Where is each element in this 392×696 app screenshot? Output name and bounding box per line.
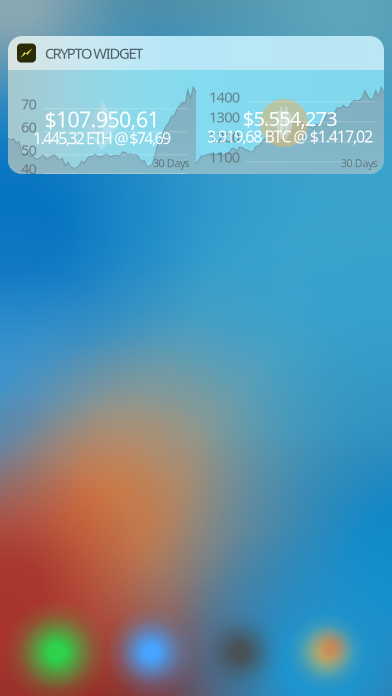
staticText: $107.950,61 [44,105,159,133]
staticText: 1300 [209,107,240,126]
staticText: 30 Days [153,156,190,170]
staticText: 1400 [209,87,240,106]
staticText: $5.554,273 [243,105,337,132]
staticText: 30 Days [341,156,378,170]
staticText: CRYPTO WIDGET [45,43,143,63]
staticText: 1100 [209,147,240,166]
staticText: 60 [21,117,37,136]
staticText: 3.919,68 BTC @ $1.417,02 [207,126,373,147]
staticText: 50 [21,140,37,159]
staticText: 40 [21,159,37,178]
staticText: 1200 [209,127,240,146]
button[interactable]: CRYPTO WIDGET [8,36,384,174]
staticText: 70 [21,94,37,113]
staticText: 1.445,32 ETH @ $74,69 [33,127,171,148]
